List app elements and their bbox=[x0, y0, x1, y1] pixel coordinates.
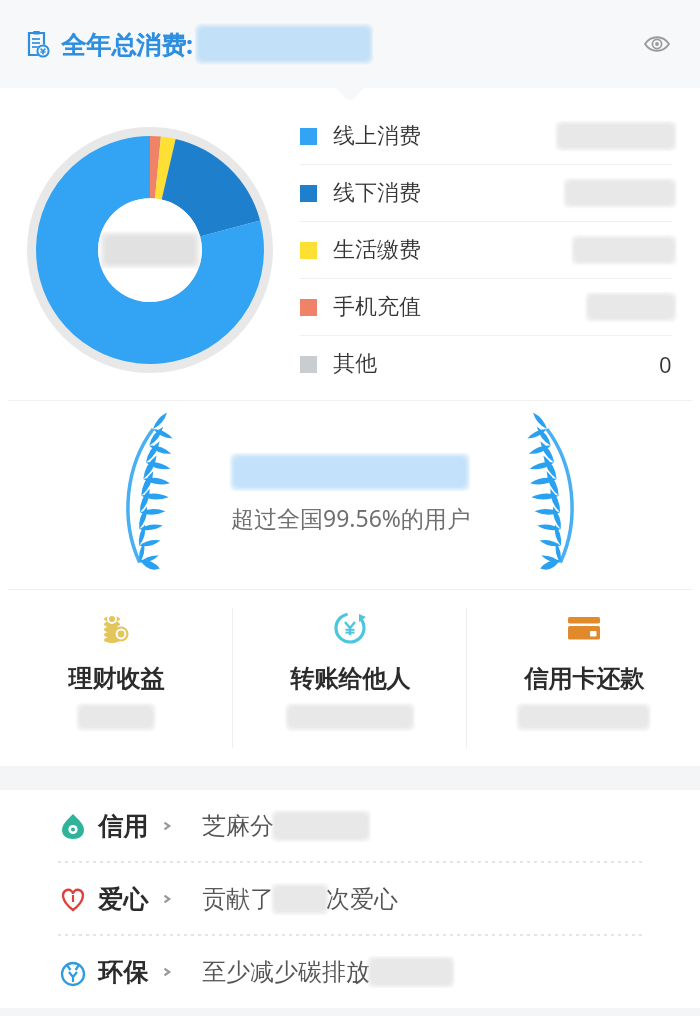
button[interactable]: Toggle amount visibility bbox=[636, 23, 678, 65]
button[interactable]: 信用 bbox=[0, 790, 700, 862]
button[interactable]: 爱心 bbox=[0, 863, 700, 935]
staticText: 其他 bbox=[333, 350, 377, 378]
button[interactable]: 生活缴费 bbox=[300, 222, 672, 278]
button[interactable]: 环保 bbox=[0, 936, 700, 1008]
staticText: 生活缴费 bbox=[333, 236, 421, 264]
staticText: 线下消费 bbox=[333, 179, 421, 207]
staticText: 爱心 bbox=[98, 884, 148, 915]
button[interactable]: 理财收益 bbox=[0, 590, 232, 726]
staticText: 信用卡还款 bbox=[524, 664, 644, 694]
staticText: 信用 bbox=[98, 811, 148, 842]
staticText: 芝麻分 bbox=[202, 811, 274, 841]
staticText: 超过全国99.56%的用户 bbox=[231, 502, 470, 533]
button[interactable]: 手机充值 bbox=[300, 279, 672, 335]
staticText: 贡献了 bbox=[202, 884, 274, 914]
staticText: 全年总消费: bbox=[61, 27, 194, 61]
staticText: 转账给他人 bbox=[290, 664, 410, 694]
button[interactable]: 信用卡还款 bbox=[467, 590, 700, 726]
staticText: 手机充值 bbox=[333, 293, 421, 321]
button[interactable]: 线下消费 bbox=[300, 165, 672, 221]
button[interactable]: 其他 bbox=[300, 336, 672, 392]
staticText: 至少减少碳排放 bbox=[202, 957, 370, 987]
staticText: 环保 bbox=[98, 957, 148, 988]
staticText: 0 bbox=[659, 349, 672, 379]
staticText: 次爱心 bbox=[326, 884, 398, 914]
staticText: 理财收益 bbox=[68, 664, 164, 694]
staticText: 线上消费 bbox=[333, 122, 421, 150]
button[interactable]: 转账给他人 bbox=[233, 590, 466, 726]
button[interactable]: 线上消费 bbox=[300, 108, 672, 164]
